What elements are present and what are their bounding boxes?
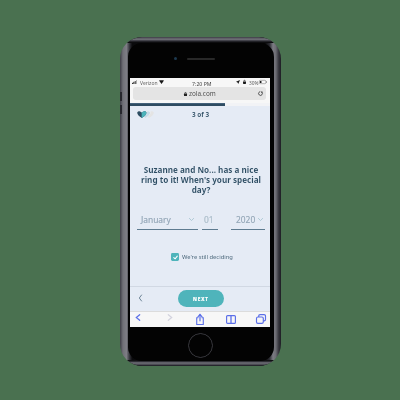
staticText: NEXT bbox=[193, 296, 209, 302]
staticText: Suzanne and No... has a nice ring to it!… bbox=[137, 164, 265, 195]
button[interactable]: Back bbox=[134, 291, 146, 304]
staticText: Verizon bbox=[140, 80, 158, 87]
button[interactable]: Forward bbox=[161, 309, 179, 325]
button[interactable]: Back bbox=[129, 309, 147, 325]
staticText: 2020 bbox=[236, 214, 256, 225]
staticText: January bbox=[141, 214, 171, 225]
other: Reload bbox=[258, 91, 263, 96]
button[interactable]: 01 bbox=[202, 214, 218, 229]
staticText: 30% bbox=[249, 80, 259, 87]
button[interactable]: 2020 bbox=[231, 214, 265, 229]
button[interactable]: Share bbox=[191, 311, 209, 327]
staticText: 7:20 PM bbox=[192, 80, 212, 87]
staticText: 3 of 3 bbox=[192, 110, 210, 119]
button[interactable]: We're still deciding bbox=[171, 253, 233, 261]
button[interactable]: Tabs bbox=[252, 311, 270, 327]
staticText: We're still deciding bbox=[182, 253, 233, 261]
staticText: 01 bbox=[204, 214, 214, 225]
staticText: zola.com bbox=[189, 89, 216, 98]
button[interactable]: zola.com bbox=[133, 87, 266, 100]
button[interactable]: January bbox=[137, 214, 198, 229]
button[interactable]: NEXT bbox=[178, 290, 224, 307]
button[interactable]: Bookmarks bbox=[222, 311, 240, 327]
